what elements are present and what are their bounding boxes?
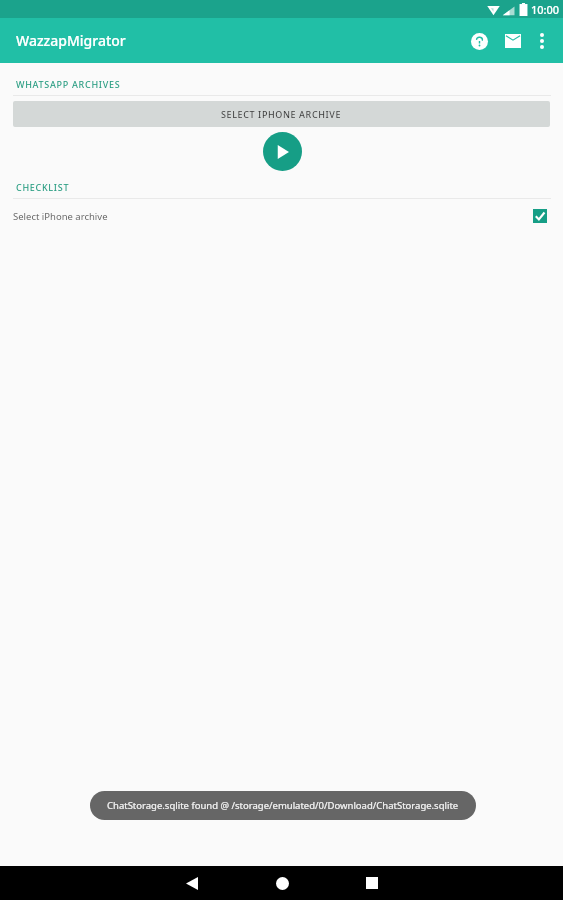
staticText: WazzapMigrator — [16, 31, 126, 50]
button[interactable]: Help — [462, 24, 496, 58]
button[interactable]: Home — [261, 866, 303, 900]
button[interactable]: Back — [171, 866, 213, 900]
staticText: SELECT IPHONE ARCHIVE — [221, 108, 342, 120]
button[interactable]: More options — [525, 24, 559, 58]
button[interactable]: SELECT IPHONE ARCHIVE — [13, 101, 550, 127]
staticText: Select iPhone archive — [13, 210, 108, 223]
staticText: ChatStorage.sqlite found @ /storage/emul… — [107, 799, 459, 812]
staticText: CHECKLIST — [16, 181, 70, 193]
button[interactable]: Recent apps — [351, 866, 393, 900]
staticText: 10:00 — [531, 2, 560, 17]
button[interactable]: Select iPhone archive — [0, 205, 563, 227]
button[interactable]: Start migration — [263, 132, 302, 171]
staticText: WHATSAPP ARCHIVES — [16, 78, 121, 90]
button[interactable]: Email — [496, 24, 530, 58]
